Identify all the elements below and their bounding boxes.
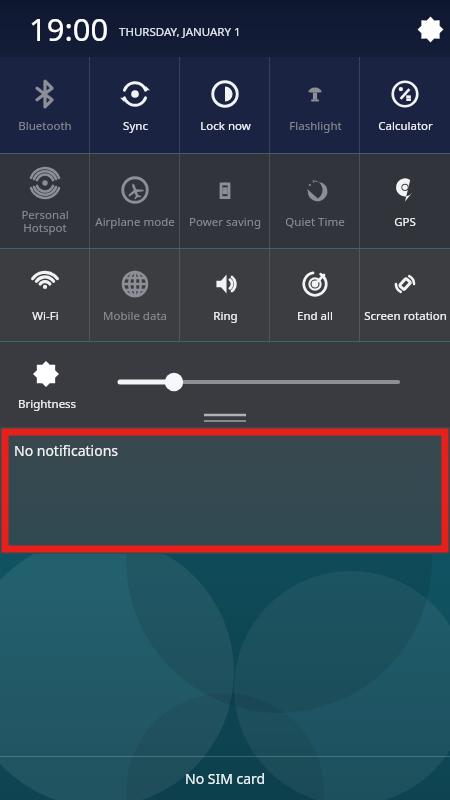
staticText: No SIM card	[185, 769, 266, 788]
button[interactable]: No notifications	[0, 427, 450, 554]
button[interactable]: Ring	[180, 249, 270, 341]
button[interactable]: Calculator	[360, 57, 450, 153]
button[interactable]: Screen rotation	[360, 249, 450, 341]
button[interactable]: Sync	[90, 57, 180, 153]
staticText: Power saving	[189, 214, 261, 230]
staticText: Screen rotation	[364, 308, 447, 324]
staticText: Wi-Fi	[32, 308, 59, 324]
button[interactable]: Bluetooth	[0, 57, 90, 153]
button[interactable]: Power saving	[180, 154, 270, 248]
button[interactable]: Lock now	[180, 57, 270, 153]
staticText: Personal Hotspot	[21, 207, 69, 236]
button[interactable]: Settings	[410, 9, 450, 49]
button[interactable]: End all	[270, 249, 360, 341]
staticText: Lock now	[200, 118, 251, 134]
staticText: Airplane mode	[95, 214, 175, 230]
button[interactable]: GPS	[360, 154, 450, 248]
staticText: Bluetooth	[18, 118, 72, 134]
staticText: GPS	[394, 214, 416, 230]
button[interactable]: Wi-Fi	[0, 249, 90, 341]
staticText: 19:00	[29, 8, 109, 50]
staticText: Flashlight	[289, 118, 342, 134]
staticText: Mobile data	[103, 308, 167, 324]
staticText: THURSDAY, JANUARY 1	[119, 24, 241, 40]
staticText: Sync	[123, 118, 148, 134]
staticText: Quiet Time	[285, 214, 345, 230]
button[interactable]: Flashlight	[270, 57, 360, 153]
button[interactable]: Mobile data	[90, 249, 180, 341]
staticText: Calculator	[378, 118, 433, 134]
button[interactable]: Personal Hotspot	[0, 154, 90, 248]
staticText: Ring	[213, 308, 238, 324]
button[interactable]: Airplane mode	[90, 154, 180, 248]
button[interactable]: Quiet Time	[270, 154, 360, 248]
staticText: No notifications	[14, 441, 119, 460]
staticText: Brightness	[18, 396, 77, 412]
staticText: End all	[297, 308, 333, 324]
